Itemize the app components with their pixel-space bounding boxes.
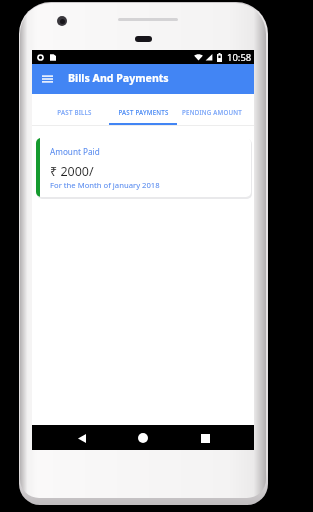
staticText: For the Month of january 2018	[50, 180, 160, 190]
button[interactable]: Recent apps	[193, 426, 217, 450]
button[interactable]: Open navigation drawer	[36, 68, 58, 90]
button[interactable]: Amount Paid	[36, 138, 251, 197]
button[interactable]: Home	[131, 426, 155, 450]
button[interactable]: Back	[70, 426, 94, 450]
button[interactable]: PENDING AMOUNT	[170, 94, 254, 125]
button[interactable]: PAST BILLS	[32, 94, 117, 125]
staticText: PENDING AMOUNT	[182, 108, 242, 116]
button[interactable]: PAST PAYMENTS	[117, 94, 170, 125]
staticText: Amount Paid	[50, 146, 100, 157]
staticText: ₹ 2000/	[50, 163, 94, 180]
staticText: PAST BILLS	[57, 108, 92, 116]
staticText: Bills And Payments	[68, 71, 169, 85]
staticText: PAST PAYMENTS	[118, 108, 169, 116]
staticText: 10:58	[227, 51, 252, 64]
